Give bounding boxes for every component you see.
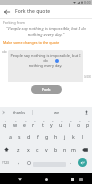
button[interactable]: 3 bbox=[20, 117, 29, 130]
button[interactable]: x bbox=[23, 143, 33, 156]
button[interactable]: v bbox=[42, 143, 51, 156]
staticText: g bbox=[45, 133, 49, 140]
staticText: 4 bbox=[34, 119, 36, 122]
button[interactable]: n bbox=[60, 143, 69, 156]
staticText: ?123 bbox=[2, 161, 9, 165]
button[interactable]: Emoji bbox=[24, 156, 34, 169]
button[interactable]: Fork bbox=[31, 85, 62, 94]
staticText: q bbox=[3, 121, 7, 128]
button[interactable]: Enter bbox=[77, 156, 87, 169]
button[interactable]: Hide keyboard bbox=[14, 173, 26, 184]
button[interactable]: Switch keyboard bbox=[76, 174, 86, 184]
staticText: l bbox=[82, 133, 84, 140]
button[interactable]: k bbox=[69, 130, 78, 143]
button[interactable]: g bbox=[42, 130, 51, 143]
button[interactable]: l bbox=[78, 130, 87, 143]
staticText: Make some changes to the quote bbox=[3, 40, 60, 45]
button[interactable]: j bbox=[60, 130, 69, 143]
staticText: r bbox=[32, 121, 35, 128]
button[interactable]: 9 bbox=[74, 117, 83, 130]
staticText: x bbox=[27, 146, 30, 153]
staticText: 1 bbox=[5, 119, 7, 122]
button[interactable]: ?123 bbox=[0, 156, 11, 169]
staticText: j bbox=[64, 133, 66, 140]
button[interactable]: People say nothing is impossible, but I … bbox=[8, 50, 83, 82]
button[interactable]: 1 bbox=[0, 117, 10, 130]
staticText: f bbox=[37, 133, 39, 140]
button[interactable]: 8 bbox=[65, 117, 74, 130]
staticText: 0 bbox=[88, 119, 90, 122]
staticText: u bbox=[59, 121, 63, 128]
staticText: Forking from bbox=[3, 20, 25, 25]
staticText: Fork bbox=[42, 87, 51, 92]
staticText: “People say nothing is impossible, but I… bbox=[4, 26, 88, 37]
button[interactable]: m bbox=[69, 143, 78, 156]
staticText: t bbox=[42, 121, 44, 128]
staticText: i bbox=[69, 121, 71, 128]
button[interactable]: s bbox=[15, 130, 24, 143]
staticText: o bbox=[77, 121, 81, 128]
button[interactable]: 2 bbox=[10, 117, 20, 130]
button[interactable]: 6 bbox=[47, 117, 56, 130]
staticText: b bbox=[54, 146, 58, 153]
staticText: 5 bbox=[43, 119, 45, 122]
staticText: p bbox=[86, 121, 90, 128]
staticText: 9 bbox=[79, 119, 81, 122]
staticText: Fork the quote bbox=[15, 8, 51, 15]
staticText: y bbox=[50, 121, 53, 128]
staticText: a bbox=[9, 133, 12, 140]
staticText: 0/400 bbox=[84, 75, 91, 79]
staticText: 3 bbox=[25, 119, 27, 122]
staticText: , bbox=[18, 159, 20, 166]
staticText: k bbox=[72, 133, 75, 140]
button[interactable]: h bbox=[51, 130, 60, 143]
staticText: . bbox=[70, 159, 72, 166]
staticText: 6 bbox=[52, 119, 54, 122]
staticText: h bbox=[54, 133, 58, 140]
button[interactable]: Voice input bbox=[80, 107, 92, 117]
staticText: m bbox=[71, 146, 76, 153]
button[interactable]: 7 bbox=[56, 117, 65, 130]
button[interactable]: More suggestions bbox=[0, 107, 6, 117]
staticText: e bbox=[23, 121, 26, 128]
staticText: we bbox=[54, 110, 60, 115]
button[interactable]: Back bbox=[0, 5, 13, 18]
button[interactable]: f bbox=[33, 130, 42, 143]
button[interactable]: Recent apps bbox=[66, 173, 78, 184]
staticText: 7 bbox=[61, 119, 63, 122]
button[interactable]: Backspace bbox=[78, 143, 92, 156]
staticText: 8:00 bbox=[84, 0, 91, 5]
staticText: v bbox=[45, 146, 48, 153]
button[interactable]: 5 bbox=[38, 117, 47, 130]
button[interactable]: c bbox=[33, 143, 42, 156]
staticText: 8 bbox=[70, 119, 72, 122]
staticText: People say nothing is impossible, but I … bbox=[10, 53, 81, 68]
staticText: n bbox=[63, 146, 67, 153]
button[interactable]: Shift bbox=[0, 143, 13, 156]
staticText: abc bbox=[2, 50, 7, 54]
staticText: s bbox=[18, 133, 21, 140]
staticText: w bbox=[13, 121, 18, 128]
button[interactable]: . bbox=[66, 156, 76, 169]
button[interactable]: thanks bbox=[6, 107, 32, 117]
button[interactable]: d bbox=[24, 130, 33, 143]
staticText: c bbox=[36, 146, 39, 153]
button[interactable]: b bbox=[51, 143, 60, 156]
button[interactable]: , bbox=[14, 156, 24, 169]
button[interactable]: we bbox=[33, 107, 80, 117]
button[interactable]: Home bbox=[40, 173, 52, 184]
staticText: thanks bbox=[13, 110, 26, 115]
button[interactable]: z bbox=[13, 143, 23, 156]
staticText: 2 bbox=[15, 119, 17, 122]
button[interactable]: 0 bbox=[83, 117, 92, 130]
staticText: z bbox=[17, 146, 20, 153]
button[interactable]: 4 bbox=[29, 117, 38, 130]
staticText: d bbox=[27, 133, 31, 140]
button[interactable]: a bbox=[5, 130, 15, 143]
